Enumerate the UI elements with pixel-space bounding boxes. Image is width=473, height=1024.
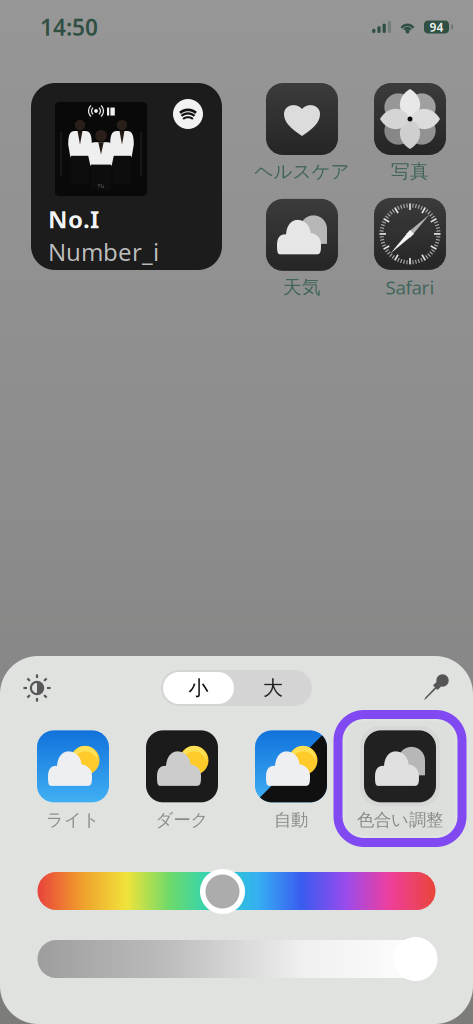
button[interactable]: ダーク [127, 711, 236, 846]
staticText: 自動 [274, 809, 308, 831]
staticText: 写真 [391, 160, 429, 183]
staticText: No.I [48, 203, 99, 235]
staticText: Safari [385, 275, 434, 300]
staticText: ライト [46, 809, 100, 831]
button[interactable]: 写真 [356, 83, 464, 183]
staticText: 94 [429, 19, 443, 35]
button[interactable]: Appearance [15, 666, 59, 710]
staticText: YG [97, 182, 104, 189]
button[interactable]: 小 [162, 670, 235, 706]
button[interactable]: 天気 [248, 199, 356, 299]
button[interactable]: YG [31, 83, 222, 270]
staticText: 小 [188, 676, 208, 700]
button[interactable]: 色合い調整 [345, 711, 454, 846]
button[interactable]: 大 [235, 670, 311, 706]
button[interactable]: 自動 [236, 711, 345, 846]
staticText: 天気 [283, 276, 321, 299]
staticText: ダーク [155, 809, 208, 831]
staticText: Number_i [48, 236, 159, 268]
staticText: ヘルスケア [254, 160, 349, 183]
staticText: 大 [263, 676, 283, 700]
button[interactable]: ライト [18, 711, 127, 846]
button[interactable]: Pick colour [414, 666, 458, 710]
staticText: 14:50 [40, 12, 98, 42]
staticText: 色合い調整 [357, 809, 443, 831]
button[interactable]: Safari [356, 198, 464, 300]
button[interactable]: ヘルスケア [248, 83, 356, 183]
